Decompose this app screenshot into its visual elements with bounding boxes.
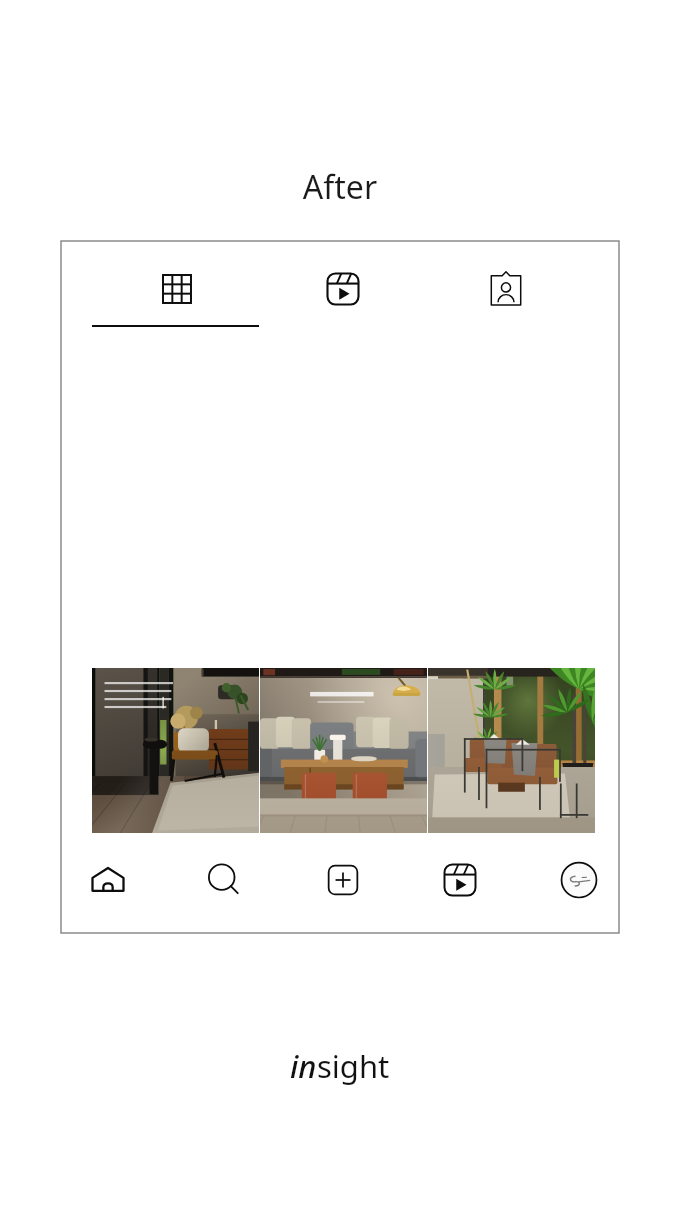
- button[interactable]: Search: [169, 848, 279, 912]
- button[interactable]: Post 1: [92, 668, 259, 833]
- button[interactable]: Create: [288, 848, 398, 912]
- button[interactable]: Reels: [283, 261, 403, 317]
- button[interactable]: Post 2: [260, 668, 427, 833]
- button[interactable]: Profile: [524, 848, 634, 912]
- button[interactable]: Home: [53, 848, 163, 912]
- staticText: After: [0, 165, 680, 209]
- button[interactable]: Grid posts: [117, 261, 237, 317]
- button[interactable]: Reels: [405, 848, 515, 912]
- staticText: in: [290, 1045, 317, 1087]
- staticText: sight: [317, 1045, 390, 1087]
- button[interactable]: Post 3: [428, 668, 595, 833]
- button[interactable]: Tagged: [446, 261, 566, 317]
